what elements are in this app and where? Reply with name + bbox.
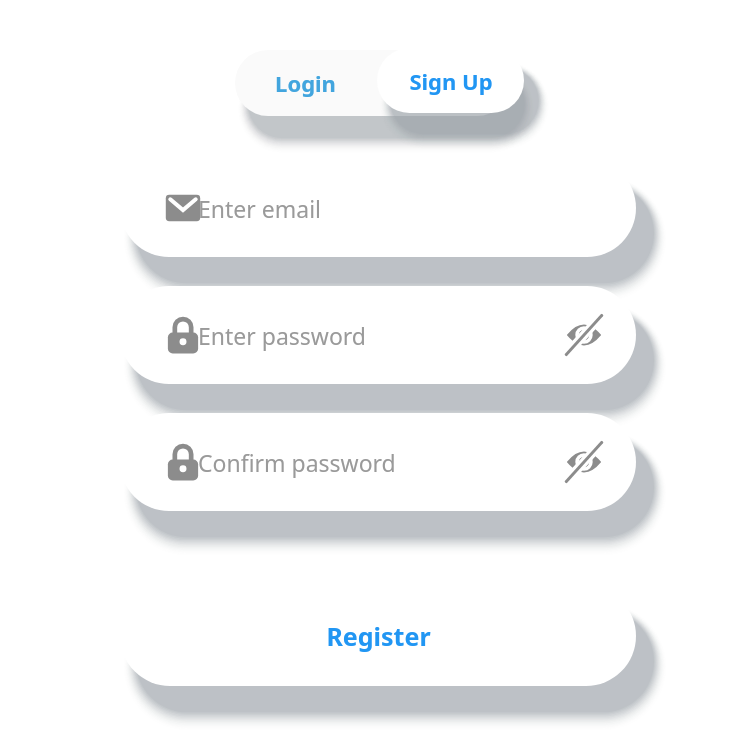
staticText: Confirm password xyxy=(198,447,396,478)
button[interactable]: Show password xyxy=(556,307,612,363)
button[interactable]: Login xyxy=(235,50,375,116)
staticText: Enter email xyxy=(198,193,322,224)
button[interactable]: Enter password xyxy=(120,286,636,384)
button[interactable]: Show confirm password xyxy=(556,434,612,490)
button[interactable]: Sign Up xyxy=(377,48,524,113)
staticText: Sign Up xyxy=(409,66,493,96)
staticText: Login xyxy=(275,68,336,98)
button[interactable]: Enter email xyxy=(120,159,636,257)
button[interactable]: Confirm password xyxy=(120,413,636,511)
staticText: Register xyxy=(326,619,431,653)
staticText: Enter password xyxy=(198,320,367,351)
button[interactable]: Register xyxy=(120,586,636,686)
